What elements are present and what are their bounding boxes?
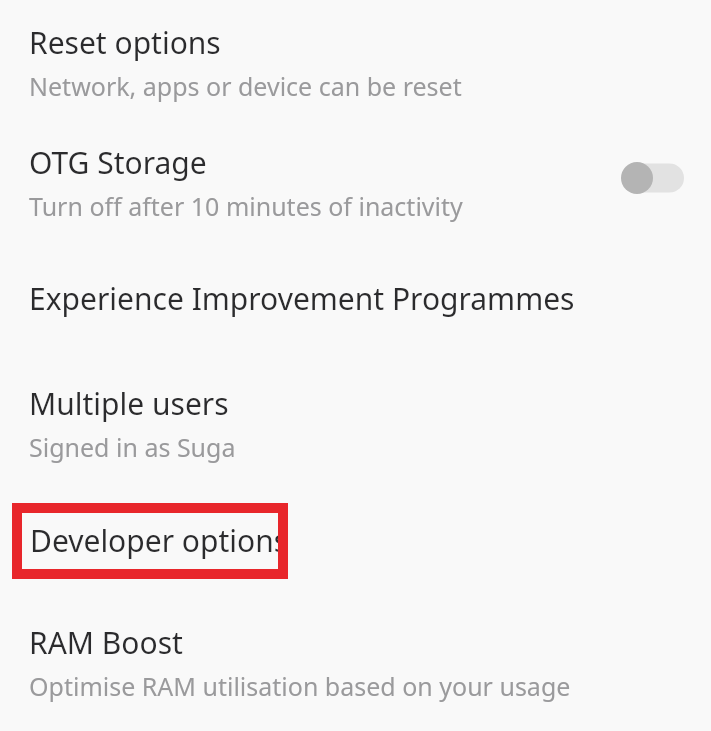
staticText: Developer options (30, 520, 289, 561)
staticText: RAM Boost (29, 622, 183, 663)
staticText: Signed in as Suga (29, 430, 236, 464)
button[interactable]: Experience Improvement Programmes (0, 264, 711, 338)
staticText: Experience Improvement Programmes (29, 278, 575, 319)
staticText: Turn off after 10 minutes of inactivity (29, 189, 463, 223)
staticText: OTG Storage (29, 142, 207, 183)
staticText: Multiple users (29, 383, 229, 424)
staticText: Optimise RAM utilisation based on your u… (29, 669, 571, 703)
button[interactable]: Multiple users (0, 369, 711, 479)
button[interactable]: Developer options (12, 503, 288, 579)
button[interactable]: OTG Storage (0, 128, 711, 238)
button[interactable]: RAM Boost (0, 608, 711, 718)
staticText: Network, apps or device can be reset (29, 69, 462, 103)
button[interactable]: OTG Storage toggle, off (614, 155, 692, 201)
button[interactable]: Reset options (0, 8, 711, 118)
staticText: Reset options (29, 22, 221, 63)
